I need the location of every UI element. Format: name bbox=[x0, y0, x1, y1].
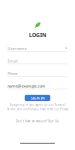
staticText: Phone bbox=[7, 71, 17, 76]
staticText: name@example.com bbox=[7, 83, 45, 89]
staticText: Don't have an account? Sign Up bbox=[16, 120, 59, 123]
staticText: Email bbox=[7, 58, 17, 64]
staticText: Username bbox=[7, 46, 26, 51]
button[interactable]: SIGN IN bbox=[25, 95, 50, 101]
staticText: SIGN IN bbox=[30, 95, 44, 101]
staticText: Service and confirm you have read our Pr… bbox=[7, 107, 68, 111]
button[interactable]: Don't have an account? Sign Up bbox=[16, 120, 59, 123]
button[interactable]: name@example.com bbox=[7, 83, 67, 89]
button[interactable]: Username bbox=[7, 46, 67, 52]
staticText: LOGIN bbox=[29, 31, 46, 38]
staticText: By signing in you agree to our Terms of bbox=[9, 103, 65, 107]
button[interactable]: Phone bbox=[7, 71, 67, 77]
button[interactable]: Email bbox=[7, 58, 67, 64]
